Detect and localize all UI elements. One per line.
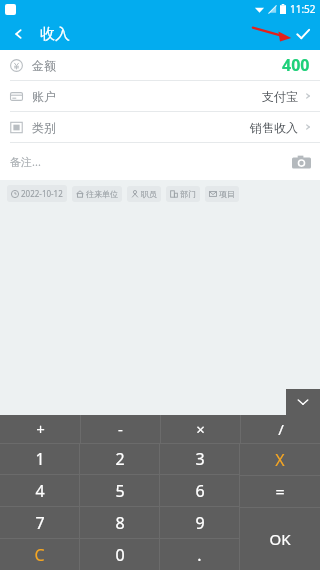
button[interactable]: .: [160, 539, 239, 570]
staticText: 销售收入: [250, 120, 298, 135]
button[interactable]: Back: [0, 18, 32, 50]
staticText: 备注...: [10, 154, 41, 169]
staticText: X: [275, 449, 285, 471]
button[interactable]: 5: [80, 475, 159, 506]
staticText: 部门: [180, 189, 196, 199]
button[interactable]: Confirm: [286, 18, 320, 50]
button[interactable]: +: [0, 415, 80, 443]
staticText: /: [278, 419, 284, 439]
staticText: =: [275, 481, 285, 503]
button[interactable]: 3: [160, 444, 239, 474]
staticText: OK: [269, 529, 291, 549]
staticText: 11:52: [290, 2, 316, 16]
staticText: 2022-10-12: [21, 188, 63, 199]
staticText: 4: [35, 480, 45, 502]
staticText: 类别: [32, 120, 56, 135]
button[interactable]: 备注...: [0, 143, 320, 180]
button[interactable]: 部门: [166, 186, 200, 202]
button[interactable]: 9: [160, 507, 239, 538]
staticText: .: [197, 544, 202, 566]
button[interactable]: 0: [80, 539, 159, 570]
staticText: 收入: [40, 25, 70, 44]
button[interactable]: C: [0, 539, 79, 570]
staticText: 金额: [32, 58, 56, 73]
button[interactable]: 账户: [0, 81, 320, 111]
staticText: 职员: [141, 189, 157, 199]
staticText: 账户: [32, 89, 56, 104]
button[interactable]: X: [240, 444, 320, 475]
button[interactable]: Hide keyboard: [286, 389, 320, 415]
staticText: 400: [282, 54, 310, 76]
button[interactable]: 类别: [0, 112, 320, 142]
button[interactable]: 4: [0, 475, 79, 506]
button[interactable]: OK: [240, 508, 320, 570]
button[interactable]: 8: [80, 507, 159, 538]
button[interactable]: -: [81, 415, 160, 443]
button[interactable]: 2: [80, 444, 159, 474]
button[interactable]: /: [241, 415, 320, 443]
staticText: 5: [115, 480, 125, 502]
button[interactable]: 7: [0, 507, 79, 538]
staticText: 8: [115, 512, 125, 534]
button[interactable]: 往来单位: [72, 186, 122, 202]
button[interactable]: ×: [161, 415, 240, 443]
staticText: 1: [35, 448, 45, 470]
staticText: 项目: [219, 189, 235, 199]
staticText: 3: [195, 448, 205, 470]
button[interactable]: Add photo: [291, 152, 311, 172]
staticText: 0: [115, 544, 125, 566]
staticText: ×: [196, 419, 205, 439]
staticText: C: [34, 544, 45, 566]
button[interactable]: 6: [160, 475, 239, 506]
button[interactable]: =: [240, 476, 320, 507]
button[interactable]: 1: [0, 444, 79, 474]
button[interactable]: 职员: [127, 186, 161, 202]
staticText: 9: [195, 512, 205, 534]
staticText: 6: [195, 480, 205, 502]
staticText: 支付宝: [262, 89, 298, 104]
staticText: -: [118, 419, 123, 439]
button[interactable]: 2022-10-12: [7, 185, 67, 202]
button[interactable]: 项目: [205, 186, 239, 202]
staticText: +: [36, 419, 45, 439]
button[interactable]: 金额: [0, 50, 320, 80]
staticText: 往来单位: [86, 189, 118, 199]
staticText: 7: [35, 512, 45, 534]
staticText: 2: [115, 448, 125, 470]
